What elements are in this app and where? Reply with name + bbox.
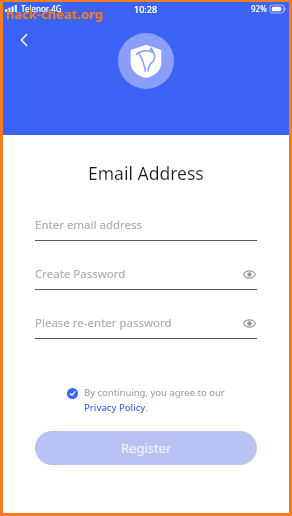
staticText: 10:28 [134, 3, 158, 15]
staticText: By continuing, you agree to our [84, 386, 225, 399]
button[interactable]: Please re-enter password [35, 312, 257, 339]
staticText: Privacy Policy. [84, 401, 148, 414]
button[interactable]: Show password [241, 266, 257, 282]
button[interactable]: Enter email address [35, 214, 257, 241]
staticText: Please re-enter password [35, 315, 172, 331]
staticText: 92% [251, 3, 267, 14]
staticText: hack-cheat.org [6, 5, 104, 23]
staticText: Telenor 4G [21, 3, 62, 14]
button[interactable]: Create Password [35, 263, 257, 290]
staticText: Register [121, 439, 172, 457]
button[interactable]: Register [35, 431, 257, 465]
button[interactable]: Show password [241, 315, 257, 331]
button[interactable]: Back [8, 24, 40, 56]
staticText: Create Password [35, 266, 126, 282]
button[interactable]: By continuing, you agree to our [35, 386, 257, 414]
staticText: Enter email address [35, 217, 143, 233]
staticText: Email Address [88, 161, 204, 185]
